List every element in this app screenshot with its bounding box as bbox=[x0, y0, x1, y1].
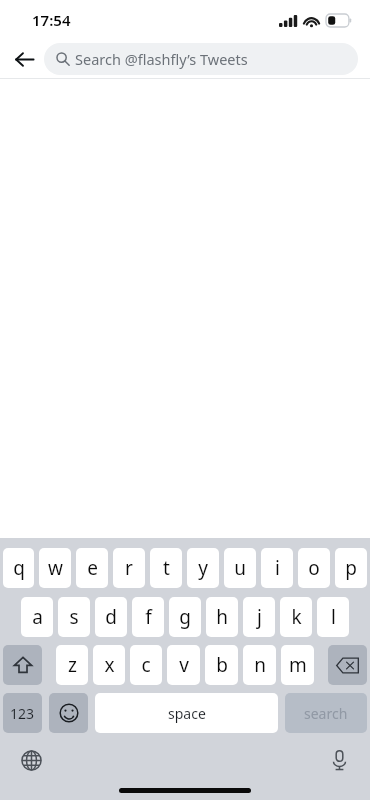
staticText: 123 bbox=[10, 704, 35, 723]
staticText: space bbox=[168, 704, 206, 723]
staticText: b bbox=[216, 652, 228, 678]
staticText: h bbox=[216, 604, 228, 630]
button[interactable]: e bbox=[76, 548, 108, 588]
button[interactable]: space bbox=[95, 693, 278, 733]
button[interactable]: z bbox=[56, 645, 88, 685]
button[interactable]: Backspace bbox=[328, 645, 367, 685]
staticText: n bbox=[254, 652, 266, 678]
staticText: d bbox=[105, 604, 117, 630]
button[interactable]: search bbox=[285, 693, 367, 733]
button[interactable]: o bbox=[298, 548, 330, 588]
button[interactable]: y bbox=[187, 548, 219, 588]
staticText: m bbox=[289, 652, 307, 678]
button[interactable]: n bbox=[243, 645, 276, 685]
button[interactable]: i bbox=[261, 548, 293, 588]
staticText: Search @flashfly’s Tweets bbox=[75, 49, 248, 69]
button[interactable]: u bbox=[224, 548, 256, 588]
button[interactable]: Emoji bbox=[49, 693, 88, 733]
staticText: u bbox=[234, 555, 246, 581]
staticText: y bbox=[198, 555, 208, 581]
button[interactable]: Dictation bbox=[322, 743, 356, 777]
button[interactable]: 123 bbox=[3, 693, 42, 733]
button[interactable]: h bbox=[206, 597, 238, 637]
button[interactable]: Search @flashfly’s Tweets bbox=[44, 43, 358, 75]
button[interactable]: b bbox=[205, 645, 238, 685]
button[interactable]: r bbox=[113, 548, 145, 588]
button[interactable]: g bbox=[169, 597, 201, 637]
button[interactable]: m bbox=[281, 645, 314, 685]
button[interactable]: v bbox=[167, 645, 200, 685]
staticText: x bbox=[104, 652, 115, 678]
staticText: z bbox=[68, 652, 77, 678]
staticText: i bbox=[275, 555, 280, 581]
staticText: 17:54 bbox=[32, 10, 71, 30]
button[interactable]: f bbox=[132, 597, 164, 637]
staticText: w bbox=[48, 555, 63, 581]
staticText: t bbox=[163, 555, 170, 581]
staticText: k bbox=[291, 604, 302, 630]
staticText: e bbox=[87, 555, 98, 581]
button[interactable]: a bbox=[21, 597, 53, 637]
staticText: f bbox=[145, 604, 152, 630]
staticText: c bbox=[141, 652, 151, 678]
button[interactable]: x bbox=[93, 645, 125, 685]
staticText: j bbox=[257, 604, 262, 630]
button[interactable]: c bbox=[130, 645, 162, 685]
button[interactable]: s bbox=[58, 597, 90, 637]
button[interactable]: Back bbox=[8, 43, 40, 75]
button[interactable]: l bbox=[317, 597, 349, 637]
button[interactable]: p bbox=[335, 548, 367, 588]
staticText: l bbox=[331, 604, 336, 630]
staticText: r bbox=[125, 555, 133, 581]
button[interactable]: k bbox=[280, 597, 312, 637]
staticText: q bbox=[13, 555, 25, 581]
button[interactable]: d bbox=[95, 597, 127, 637]
staticText: g bbox=[179, 604, 191, 630]
staticText: a bbox=[32, 604, 43, 630]
staticText: v bbox=[179, 652, 189, 678]
button[interactable]: q bbox=[3, 548, 34, 588]
button[interactable]: Shift bbox=[3, 645, 42, 685]
staticText: p bbox=[345, 555, 357, 581]
button[interactable]: Change keyboard bbox=[14, 743, 48, 777]
button[interactable]: j bbox=[243, 597, 275, 637]
button[interactable]: t bbox=[150, 548, 182, 588]
staticText: o bbox=[308, 555, 320, 581]
staticText: s bbox=[69, 604, 79, 630]
button[interactable]: w bbox=[39, 548, 71, 588]
staticText: search bbox=[304, 704, 348, 723]
